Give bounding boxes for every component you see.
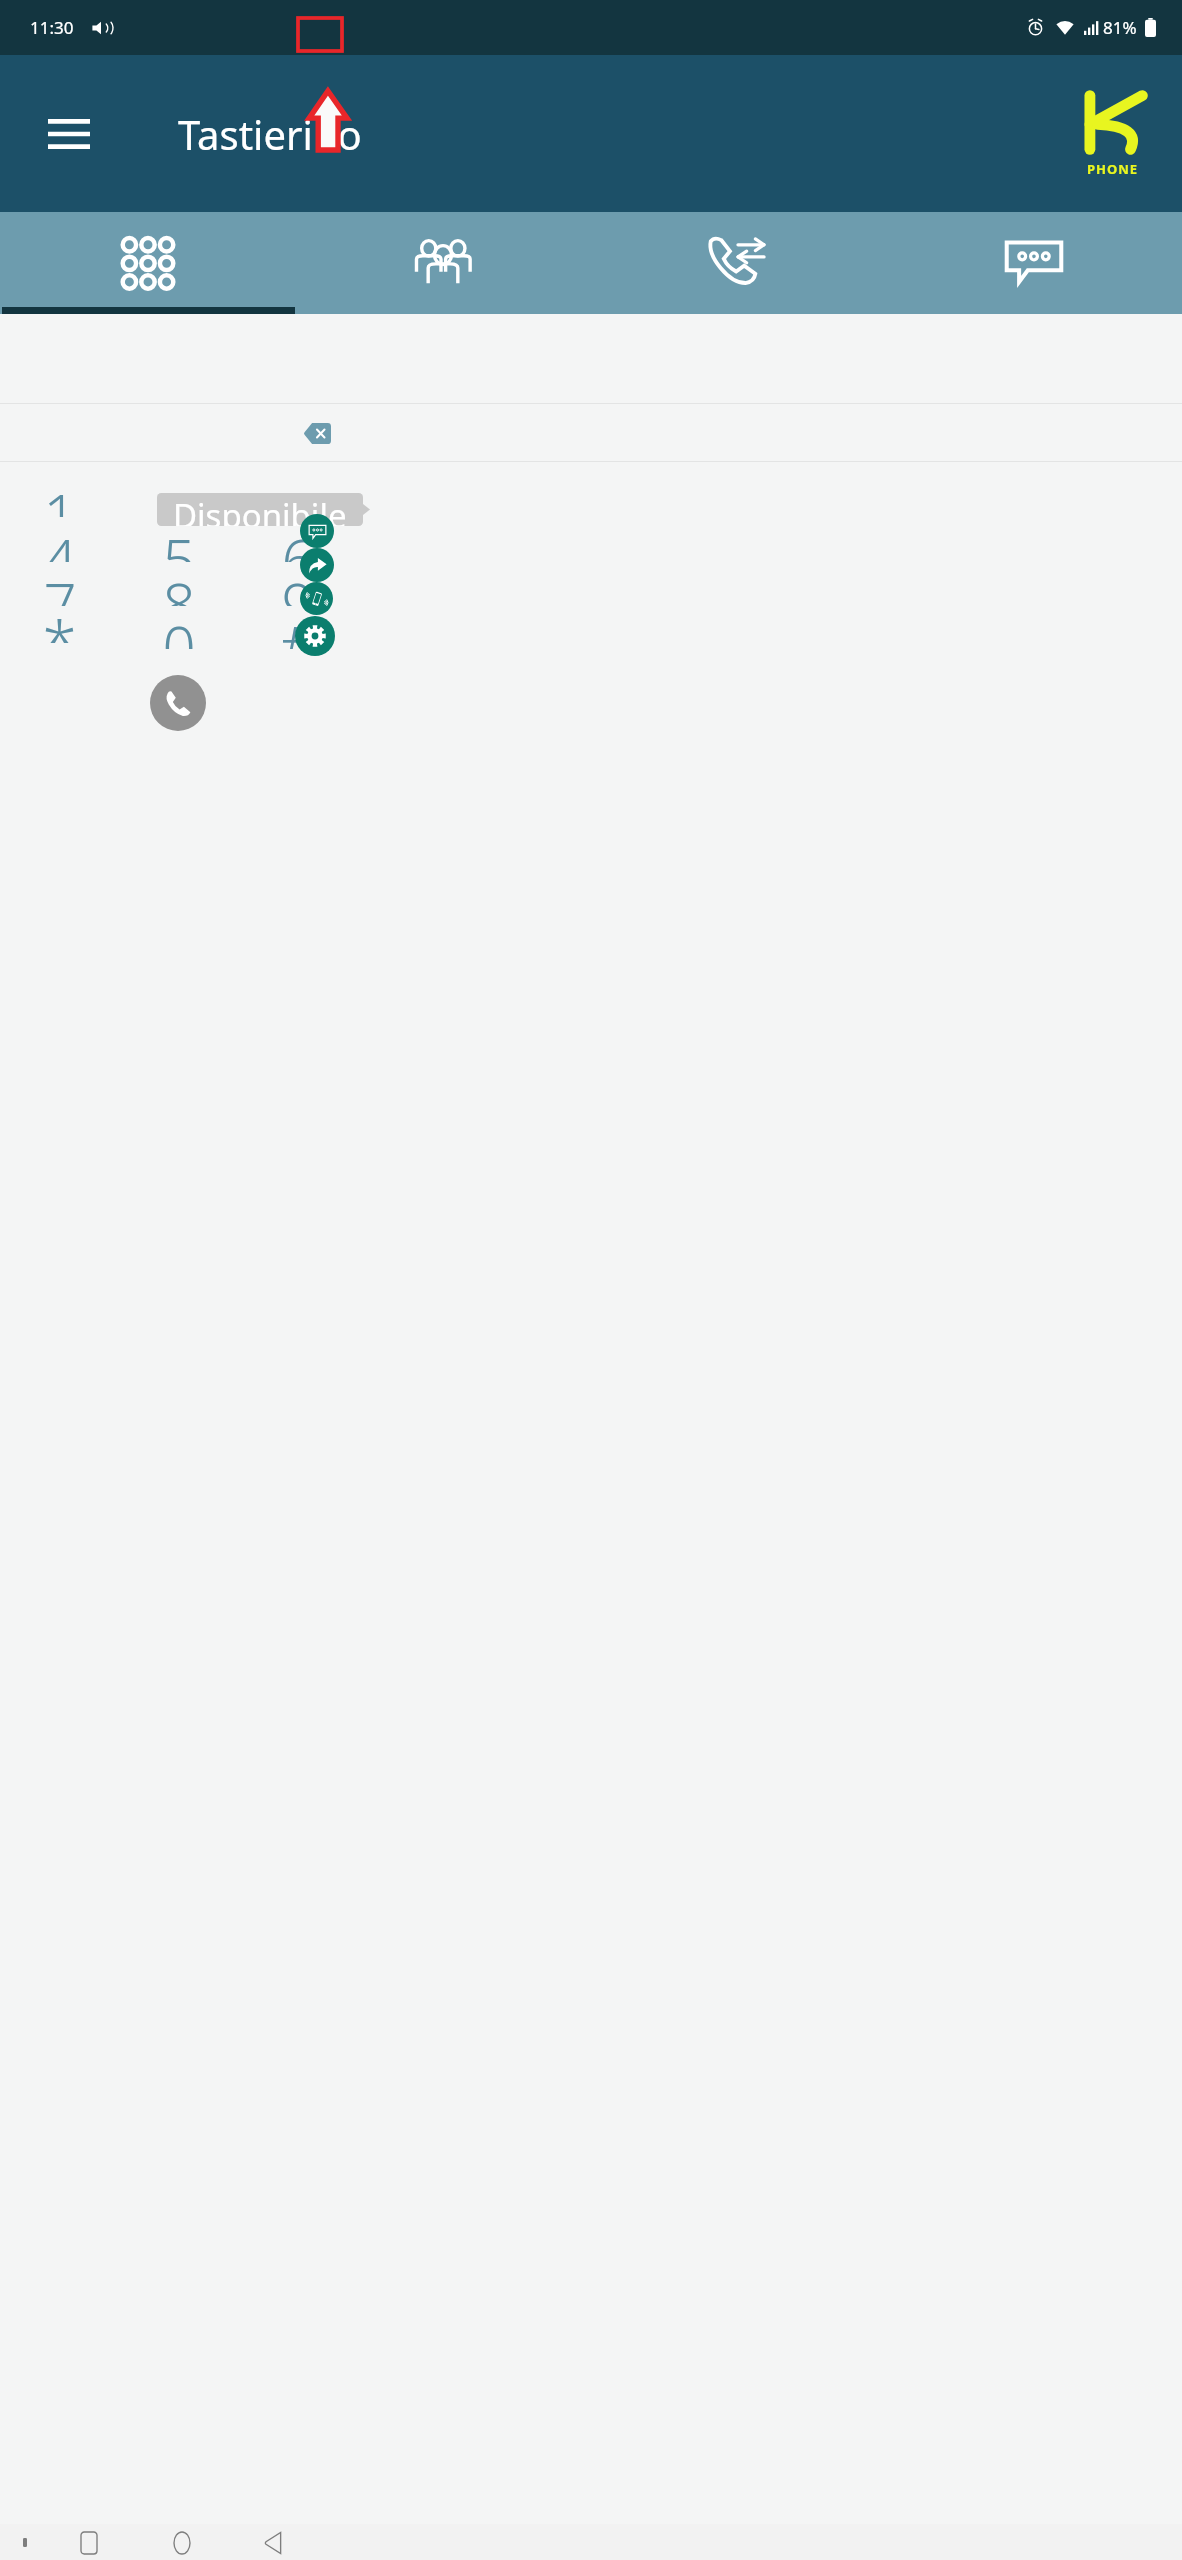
button[interactable]: 5: [133, 520, 224, 562]
button[interactable]: Dialpad: [0, 212, 295, 314]
button[interactable]: 7: [14, 564, 105, 606]
button[interactable]: Backspace: [304, 423, 331, 444]
button[interactable]: 3: [252, 475, 343, 517]
button[interactable]: 6: [252, 520, 343, 562]
button[interactable]: 0: [133, 607, 224, 649]
staticText: *: [42, 601, 77, 643]
button[interactable]: 9: [252, 564, 343, 606]
button[interactable]: Call log: [590, 212, 886, 314]
button[interactable]: Ring device: [300, 582, 333, 615]
button[interactable]: 2: [133, 475, 224, 517]
staticText: 81%: [1103, 16, 1137, 39]
button[interactable]: Keyboard indicator: [14, 2532, 35, 2553]
button[interactable]: Back: [257, 2526, 290, 2559]
staticText: Tastierino: [178, 107, 362, 161]
button[interactable]: Settings: [295, 616, 335, 656]
button[interactable]: Send message: [300, 514, 334, 548]
staticText: 3: [281, 475, 315, 517]
staticText: 6: [281, 520, 315, 562]
staticText: 7: [43, 564, 77, 606]
button[interactable]: #: [252, 607, 343, 649]
button[interactable]: K Phone logo: [1078, 86, 1148, 182]
staticText: 2: [162, 475, 196, 517]
staticText: 4: [43, 520, 77, 562]
staticText: Disponibile: [173, 493, 347, 526]
staticText: #: [279, 607, 317, 649]
staticText: 11:30: [30, 16, 74, 39]
button[interactable]: Call: [150, 675, 206, 731]
button[interactable]: Home: [165, 2526, 198, 2559]
staticText: 1: [43, 475, 77, 517]
button[interactable]: *: [14, 607, 105, 649]
staticText: 0: [162, 607, 196, 649]
button[interactable]: Recents: [72, 2526, 105, 2559]
staticText: 9: [281, 564, 315, 606]
staticText: 5: [162, 520, 196, 562]
button[interactable]: Messages: [886, 212, 1182, 314]
button[interactable]: 4: [14, 520, 105, 562]
button[interactable]: 8: [133, 564, 224, 606]
button[interactable]: Contacts: [295, 212, 590, 314]
button[interactable]: Menu: [40, 105, 98, 163]
button[interactable]: Forward: [300, 548, 334, 582]
staticText: 8: [162, 564, 196, 606]
staticText: PHONE: [1087, 160, 1139, 178]
button[interactable]: 1: [14, 475, 105, 517]
